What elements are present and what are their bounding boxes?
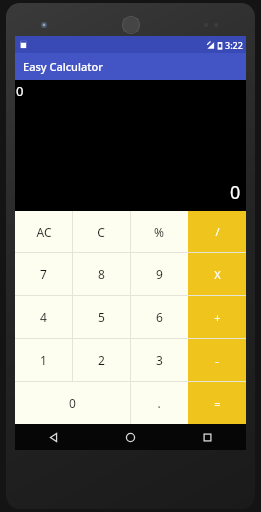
button[interactable]: . (130, 382, 188, 424)
staticText: 9 (156, 266, 163, 282)
staticText: = (214, 396, 221, 411)
staticText: 8 (98, 266, 105, 282)
button[interactable]: - (188, 339, 246, 381)
button[interactable]: 1 (15, 339, 72, 381)
button[interactable]: Home (92, 424, 169, 450)
staticText: 2 (98, 352, 105, 368)
staticText: 7 (40, 266, 47, 282)
button[interactable]: 0 (15, 382, 130, 424)
button[interactable]: 6 (130, 296, 188, 338)
staticText: X (214, 267, 221, 282)
staticText: 1 (40, 352, 47, 368)
staticText: 0 (230, 180, 241, 205)
staticText: 6 (156, 309, 163, 325)
button[interactable]: 9 (130, 253, 188, 295)
staticText: + (214, 310, 221, 325)
staticText: Easy Calculator (23, 59, 103, 74)
button[interactable]: AC (15, 211, 72, 252)
staticText: / (215, 224, 220, 239)
button[interactable]: / (188, 211, 246, 252)
button[interactable]: 4 (15, 296, 72, 338)
button[interactable]: 5 (72, 296, 130, 338)
staticText: AC (36, 224, 52, 240)
button[interactable]: C (72, 211, 130, 252)
staticText: . (157, 395, 161, 411)
staticText: 3:22 (225, 39, 243, 51)
staticText: 4 (40, 309, 47, 325)
button[interactable]: 7 (15, 253, 72, 295)
staticText: C (97, 224, 105, 240)
staticText: % (154, 224, 164, 240)
staticText: 0 (16, 82, 24, 100)
staticText: - (215, 353, 219, 368)
button[interactable]: Easy Calculator (15, 53, 246, 80)
staticText: 0 (69, 395, 76, 411)
button[interactable]: % (130, 211, 188, 252)
button[interactable]: 8 (72, 253, 130, 295)
button[interactable]: Back (15, 424, 92, 450)
button[interactable]: X (188, 253, 246, 295)
staticText: 3 (156, 352, 163, 368)
button[interactable]: + (188, 296, 246, 338)
button[interactable]: Recent apps (169, 424, 246, 450)
button[interactable]: 2 (72, 339, 130, 381)
button[interactable]: = (188, 382, 246, 424)
staticText: 5 (98, 309, 105, 325)
button[interactable]: 3 (130, 339, 188, 381)
